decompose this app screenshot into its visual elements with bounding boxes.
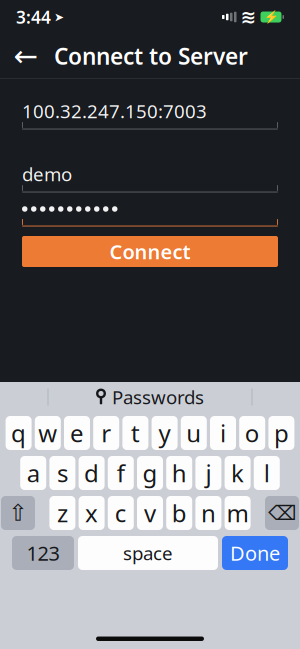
button[interactable]: c — [108, 496, 134, 530]
button[interactable]: x — [79, 496, 105, 530]
button[interactable]: m — [225, 496, 251, 530]
staticText: f — [117, 457, 125, 489]
staticText: w — [38, 417, 57, 449]
button[interactable]: s — [49, 456, 75, 490]
button[interactable]: Delete — [265, 496, 299, 530]
staticText: e — [70, 417, 84, 449]
staticText: l — [264, 457, 270, 489]
button[interactable]: t — [122, 416, 148, 450]
staticText: ⇧ — [8, 500, 27, 526]
button[interactable]: w — [35, 416, 61, 450]
button[interactable]: l — [254, 456, 280, 490]
staticText: o — [245, 417, 260, 449]
staticText: Passwords — [112, 385, 204, 409]
button[interactable]: y — [152, 416, 178, 450]
button[interactable]: a — [20, 456, 46, 490]
staticText: s — [57, 457, 68, 489]
button[interactable]: Shift — [1, 496, 35, 530]
button[interactable]: d — [79, 456, 105, 490]
button[interactable]: j — [195, 456, 221, 490]
staticText: a — [27, 457, 40, 489]
button[interactable]: i — [210, 416, 236, 450]
button[interactable]: k — [225, 456, 251, 490]
staticText: u — [186, 417, 201, 449]
button[interactable]: v — [137, 496, 163, 530]
staticText: space — [123, 541, 173, 565]
button[interactable]: Passwords — [96, 385, 204, 409]
staticText: d — [84, 457, 99, 489]
staticText: h — [172, 457, 187, 489]
staticText: ⌫ — [268, 502, 296, 524]
staticText: k — [231, 457, 244, 489]
staticText: demo — [22, 162, 72, 186]
staticText: t — [131, 417, 140, 449]
button[interactable]: Back — [4, 34, 48, 78]
staticText: m — [227, 497, 249, 529]
button[interactable]: space — [78, 536, 218, 570]
staticText: y — [159, 417, 171, 449]
staticText: v — [144, 497, 156, 529]
button[interactable]: f — [108, 456, 134, 490]
staticText: b — [172, 497, 187, 529]
staticText: ≋ — [240, 6, 256, 28]
button[interactable]: u — [181, 416, 207, 450]
staticText: g — [142, 457, 157, 489]
button[interactable]: b — [166, 496, 192, 530]
button[interactable]: q — [6, 416, 32, 450]
button[interactable]: Done — [222, 536, 288, 570]
staticText: 100.32.247.150:7003 — [22, 99, 207, 123]
button[interactable]: z — [49, 496, 75, 530]
button[interactable]: n — [195, 496, 221, 530]
button[interactable]: h — [166, 456, 192, 490]
staticText: q — [11, 417, 26, 449]
staticText: n — [201, 497, 216, 529]
button[interactable]: g — [137, 456, 163, 490]
staticText: 3:44 — [16, 5, 51, 28]
button[interactable]: o — [239, 416, 265, 450]
staticText: Connect — [109, 238, 190, 265]
staticText: r — [101, 417, 111, 449]
button[interactable]: Connect — [22, 236, 278, 267]
staticText: ➤ — [54, 10, 64, 24]
staticText: z — [57, 497, 68, 529]
button[interactable]: r — [93, 416, 119, 450]
staticText: i — [220, 417, 226, 449]
button[interactable]: e — [64, 416, 90, 450]
staticText: 123 — [26, 540, 59, 566]
button[interactable]: p — [268, 416, 294, 450]
staticText: ⚡ — [263, 10, 278, 24]
staticText: ← — [13, 39, 38, 73]
staticText: Connect to Server — [54, 41, 248, 71]
staticText: x — [85, 497, 98, 529]
staticText: Done — [230, 540, 280, 566]
staticText: c — [115, 497, 127, 529]
button[interactable]: 123 — [12, 536, 74, 570]
staticText: p — [274, 417, 289, 449]
staticText: j — [205, 457, 211, 489]
